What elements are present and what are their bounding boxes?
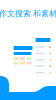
staticText: 作文搜索 和素材 — [0, 9, 56, 18]
button[interactable]: 作文搜索 和素材 — [0, 9, 56, 18]
